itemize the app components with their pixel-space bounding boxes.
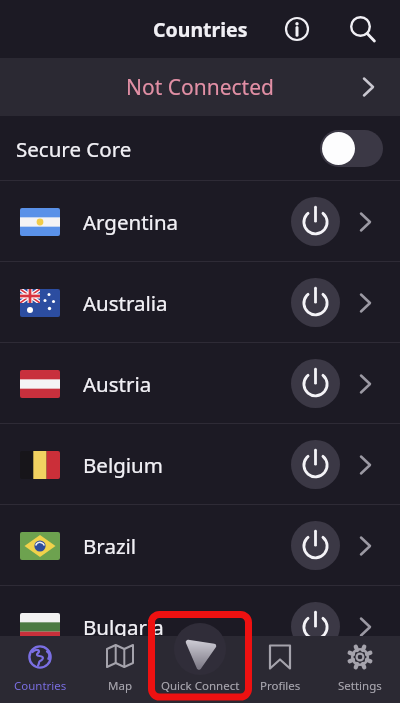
button[interactable] bbox=[320, 130, 383, 167]
button[interactable]: Bulgaria bbox=[0, 586, 400, 667]
button[interactable]: Settings bbox=[320, 636, 400, 703]
button[interactable]: Belgium bbox=[0, 424, 400, 505]
button[interactable] bbox=[291, 278, 340, 327]
button[interactable] bbox=[291, 521, 340, 570]
button[interactable]: Brazil bbox=[0, 505, 400, 586]
staticText: Countries bbox=[14, 678, 67, 694]
staticText: Bulgaria bbox=[83, 613, 164, 641]
button[interactable]: Austria bbox=[0, 343, 400, 424]
staticText: Quick Connect bbox=[161, 678, 240, 694]
staticText: Profiles bbox=[260, 678, 301, 694]
staticText: Austria bbox=[83, 370, 152, 398]
button[interactable] bbox=[348, 15, 376, 43]
staticText: Brazil bbox=[83, 532, 137, 560]
staticText: Not Connected bbox=[126, 73, 274, 102]
button[interactable]: Australia bbox=[0, 262, 400, 343]
staticText: Argentina bbox=[83, 208, 179, 236]
staticText: Australia bbox=[83, 289, 168, 317]
button[interactable]: Profiles bbox=[240, 636, 320, 703]
staticText: Secure Core bbox=[16, 135, 132, 163]
staticText: Belgium bbox=[83, 451, 163, 479]
button[interactable] bbox=[291, 602, 340, 651]
button[interactable]: Map bbox=[80, 636, 160, 703]
button[interactable]: Not Connected bbox=[0, 58, 400, 116]
button[interactable] bbox=[284, 16, 310, 42]
button[interactable]: Quick Connect bbox=[160, 636, 240, 703]
staticText: Settings bbox=[338, 678, 382, 694]
staticText: Countries bbox=[153, 16, 248, 43]
button[interactable]: Argentina bbox=[0, 181, 400, 262]
button[interactable]: Countries bbox=[0, 636, 80, 703]
button[interactable] bbox=[291, 197, 340, 246]
button[interactable] bbox=[291, 359, 340, 408]
staticText: Map bbox=[108, 678, 132, 694]
button[interactable] bbox=[291, 440, 340, 489]
